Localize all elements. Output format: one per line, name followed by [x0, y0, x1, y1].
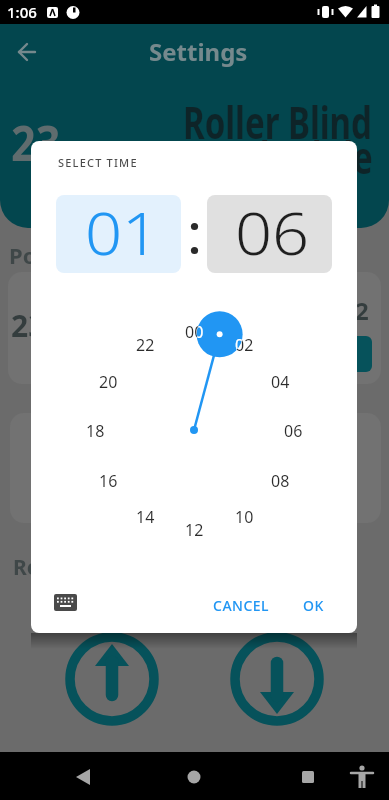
button[interactable]: 20 — [94, 371, 122, 391]
staticText: 20 — [99, 371, 118, 391]
button[interactable]: 14 — [131, 506, 159, 526]
button[interactable]: CANCEL — [203, 589, 279, 621]
button[interactable]: 12 — [180, 519, 208, 539]
staticText: 10 — [235, 506, 254, 526]
button[interactable]: 02 — [230, 334, 258, 354]
button[interactable]: 22 — [131, 334, 159, 354]
staticText: 02 — [235, 334, 254, 354]
staticText: Schedule — [224, 127, 373, 187]
staticText: 22 — [136, 334, 155, 354]
staticText: 14 — [136, 506, 155, 526]
staticText: 00 — [185, 321, 204, 341]
staticText: SELECT TIME — [58, 155, 138, 170]
staticText: 00 — [197, 321, 204, 341]
staticText: 18 — [86, 420, 105, 440]
button[interactable] — [8, 33, 46, 71]
staticText: 23 — [11, 305, 46, 346]
staticText: 02 — [235, 334, 243, 354]
staticText: 16 — [99, 470, 118, 490]
staticText: 23 — [11, 110, 60, 175]
staticText: 01 — [85, 193, 160, 271]
staticText: 12 — [185, 519, 204, 539]
staticText: Position — [9, 240, 99, 270]
button[interactable]: OK — [289, 589, 337, 621]
button[interactable]: 04 — [266, 371, 294, 391]
button[interactable]: 01 — [56, 195, 181, 273]
button[interactable] — [229, 631, 325, 727]
button[interactable] — [322, 336, 372, 372]
button[interactable]: 06 — [279, 420, 307, 440]
staticText: 06 — [284, 420, 303, 440]
staticText: 2 — [355, 294, 369, 327]
button[interactable] — [54, 593, 78, 613]
staticText: Settings — [149, 35, 248, 68]
staticText: Roller Blind — [183, 92, 372, 152]
staticText: OK — [303, 596, 324, 615]
button[interactable]: 00 — [180, 321, 208, 341]
staticText: 08 — [271, 470, 290, 490]
button[interactable]: 18 — [81, 420, 109, 440]
button[interactable]: 10 — [230, 506, 258, 526]
staticText: CANCEL — [213, 596, 270, 615]
button[interactable]: 06 — [207, 195, 332, 273]
button[interactable] — [64, 631, 160, 727]
staticText: 1:06 — [7, 2, 37, 22]
button[interactable]: 08 — [266, 470, 294, 490]
staticText: Rotation — [13, 553, 104, 582]
staticText: 06 — [235, 193, 310, 271]
button[interactable]: 16 — [94, 470, 122, 490]
staticText: 04 — [271, 371, 290, 391]
